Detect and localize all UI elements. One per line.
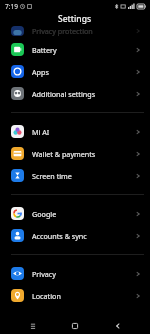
staticText: Accounts & sync [32, 231, 87, 241]
staticText: Screen time [32, 171, 72, 181]
button[interactable]: Back [108, 317, 128, 334]
button[interactable]: Recents [23, 317, 43, 334]
button[interactable]: Accounts & sync [0, 226, 150, 245]
button[interactable]: Privacy protection [0, 26, 150, 36]
staticText: Additional settings [32, 89, 96, 99]
staticText: Mi AI [32, 127, 50, 137]
staticText: Privacy protection [32, 26, 93, 36]
staticText: Battery [32, 45, 57, 55]
button[interactable]: Battery [0, 40, 150, 59]
button[interactable]: Location [0, 286, 150, 305]
button[interactable]: Mi AI [0, 122, 150, 141]
button[interactable]: Wallet & payments [0, 144, 150, 163]
button[interactable]: Screen time [0, 166, 150, 185]
staticText: Settings [58, 13, 92, 25]
staticText: Apps [32, 67, 49, 77]
staticText: 7:19 [5, 2, 18, 11]
staticText: Google [32, 209, 57, 219]
staticText: Location [32, 291, 61, 301]
staticText: Privacy [32, 269, 56, 279]
staticText: Wallet & payments [32, 149, 96, 159]
button[interactable]: Apps [0, 62, 150, 81]
button[interactable]: Privacy [0, 264, 150, 283]
button[interactable]: Home [65, 317, 85, 334]
button[interactable]: Google [0, 204, 150, 223]
button[interactable]: Additional settings [0, 84, 150, 103]
